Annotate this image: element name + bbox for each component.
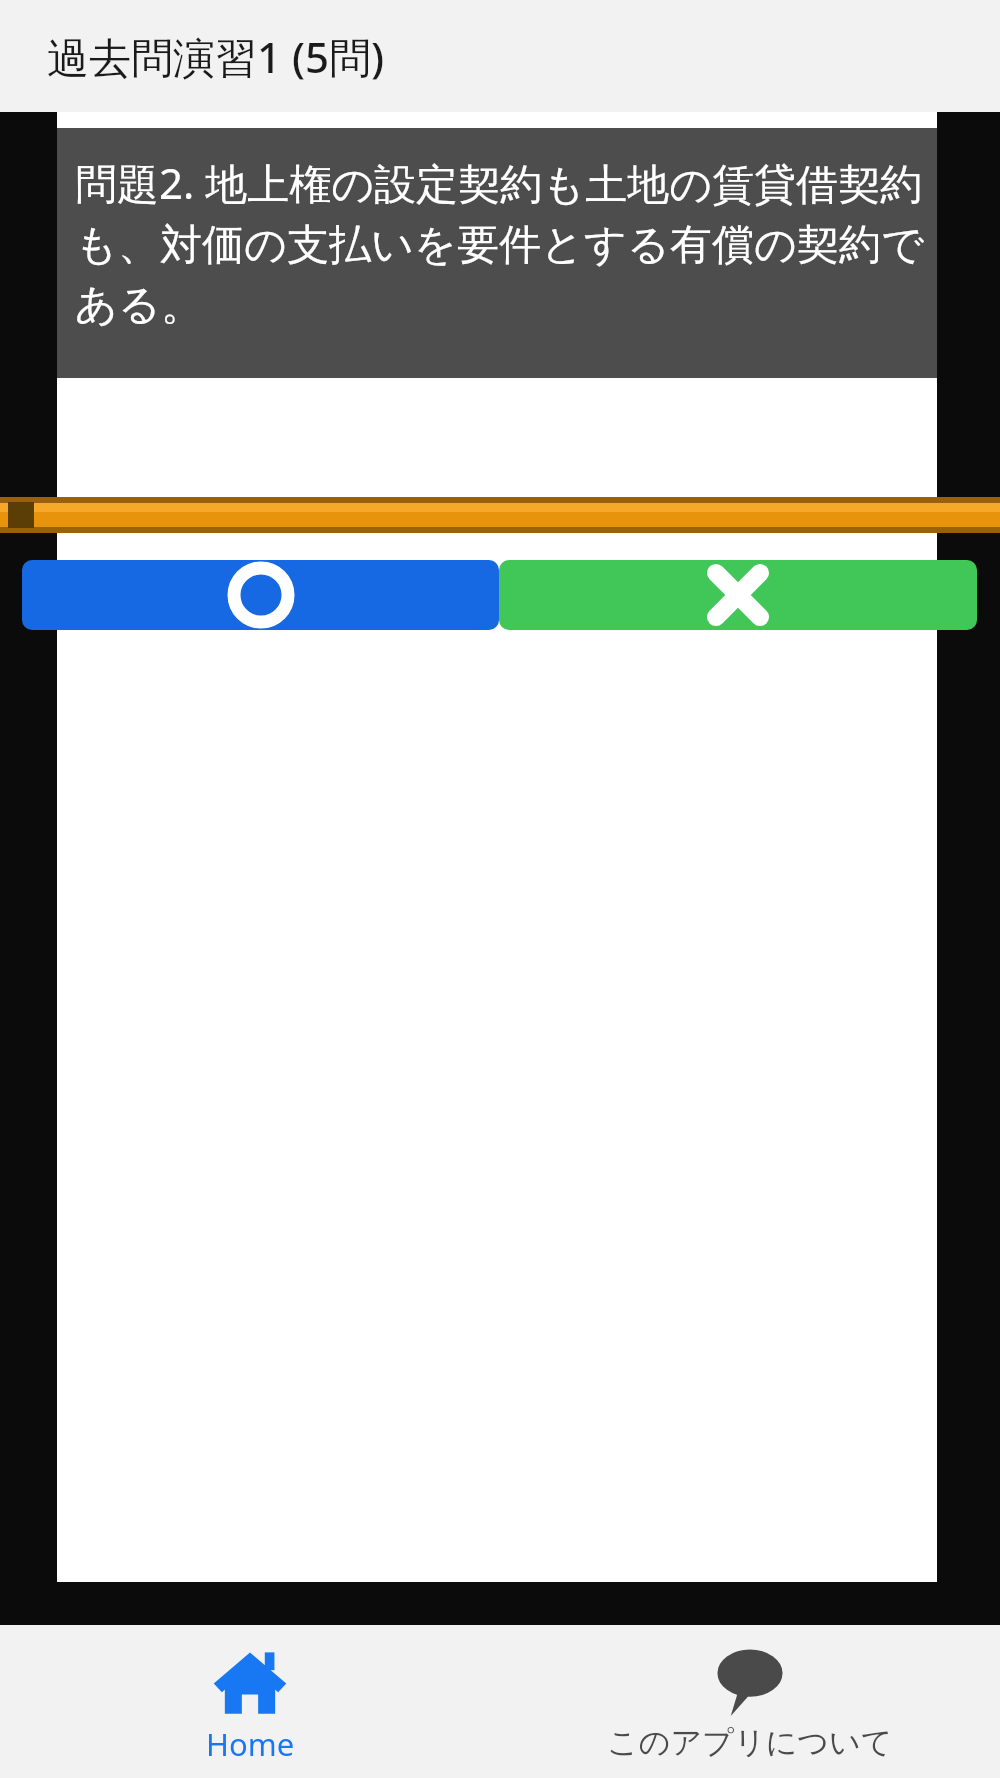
button[interactable]: バツ（誤り） — [499, 560, 977, 630]
staticText: このアプリについて — [607, 1723, 893, 1762]
staticText: 過去問演習1 (5問) — [47, 28, 385, 85]
button[interactable]: Home — [0, 1625, 500, 1778]
button[interactable]: マル（正しい） — [22, 560, 499, 630]
button[interactable]: このアプリについて — [500, 1625, 1000, 1778]
staticText: 問題2. 地上権の設定契約も土地の賃貸借契約も、対価の支払いを要件とする有償の契… — [75, 154, 933, 331]
staticText: Home — [206, 1723, 295, 1765]
